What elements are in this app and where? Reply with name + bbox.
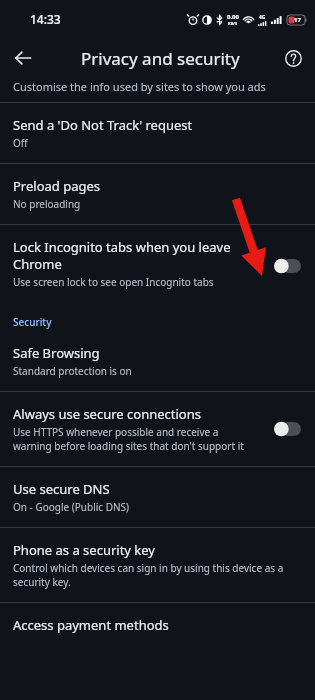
- staticText: Safe Browsing: [13, 344, 100, 362]
- button[interactable]: Preload pages: [0, 164, 315, 224]
- button[interactable]: Phone as a security key: [0, 528, 315, 602]
- staticText: 17: [294, 16, 301, 24]
- button[interactable]: Use secure DNS: [0, 467, 315, 527]
- staticText: 14:33: [30, 11, 61, 27]
- staticText: Access payment methods: [13, 616, 169, 634]
- button[interactable]: Back: [6, 41, 40, 75]
- staticText: Off: [13, 136, 28, 150]
- button[interactable]: Lock Incognito tabs when you leave Chrom…: [0, 225, 315, 302]
- staticText: KB/S: [228, 21, 238, 26]
- staticText: Phone as a security key: [13, 541, 155, 559]
- staticText: Always use secure connections: [13, 405, 201, 423]
- button[interactable]: Send a 'Do Not Track' request: [0, 103, 315, 163]
- button[interactable]: Safe Browsing: [0, 340, 315, 391]
- staticText: Privacy and security: [81, 47, 240, 70]
- staticText: Lock Incognito tabs when you leave Chrom…: [13, 238, 259, 273]
- staticText: No preloading: [13, 197, 81, 211]
- button[interactable]: Access payment methods: [0, 603, 315, 647]
- staticText: Control which devices can sign in by usi…: [13, 561, 299, 589]
- staticText: Standard protection is on: [13, 364, 132, 378]
- button[interactable]: Always use secure connections: [0, 392, 315, 466]
- button[interactable]: Help: [277, 42, 309, 74]
- staticText: 4G: [259, 14, 266, 21]
- staticText: Use HTTPS whenever possible and receive …: [13, 425, 259, 453]
- staticText: 0.00: [227, 13, 239, 21]
- staticText: Send a 'Do Not Track' request: [13, 116, 193, 134]
- staticText: Security: [13, 315, 52, 329]
- staticText: Use secure DNS: [13, 480, 110, 498]
- staticText: Customise the info used by sites to show…: [13, 79, 266, 94]
- button[interactable]: Lock Incognito tabs when you leave Chrom…: [270, 255, 304, 277]
- staticText: Use screen lock to see open Incognito ta…: [13, 275, 214, 289]
- button[interactable]: Always use secure connections switch, of…: [270, 418, 304, 440]
- staticText: Preload pages: [13, 177, 101, 195]
- staticText: On - Google (Public DNS): [13, 500, 130, 514]
